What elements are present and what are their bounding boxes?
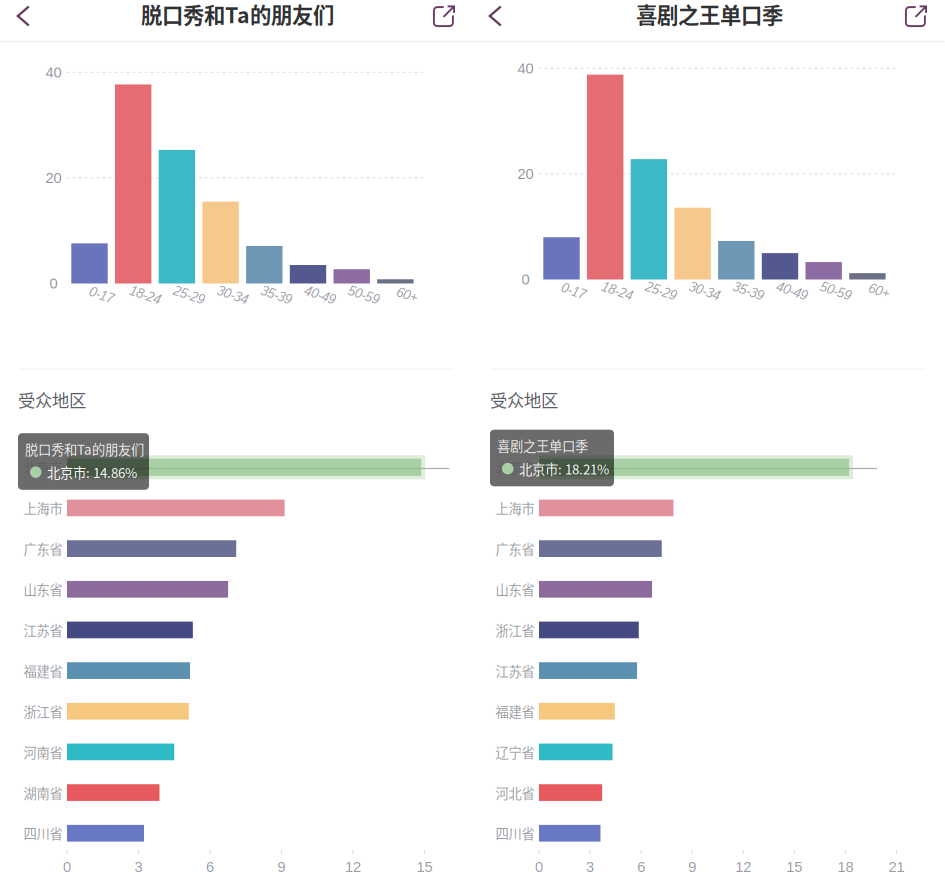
staticText: 福建省 [495, 702, 534, 721]
staticText: 35-39 [732, 284, 764, 298]
staticText: 山东省 [23, 580, 62, 599]
staticText: 30-34 [689, 284, 721, 298]
staticText: 福建省 [23, 661, 62, 680]
staticText: 21 [888, 859, 904, 875]
staticText: 50-59 [348, 288, 380, 302]
staticText: 25-29 [645, 284, 677, 298]
staticText: 0 [63, 859, 71, 875]
staticText: 40-49 [776, 284, 808, 298]
staticText: 喜剧之王单口季 [636, 0, 783, 29]
staticText: 脱口秀和Ta的朋友们 [25, 439, 144, 458]
staticText: 12 [735, 859, 751, 875]
button[interactable]: 分享 [421, 0, 467, 34]
button[interactable]: 返回 [472, 0, 518, 34]
staticText: 北京市: 18.21% [519, 459, 609, 478]
staticText: 40 [45, 64, 61, 80]
staticText: 0 [521, 271, 529, 288]
staticText: 9 [277, 859, 285, 875]
staticText: 喜剧之王单口季 [497, 436, 588, 455]
staticText: 四川省 [23, 824, 62, 843]
staticText: 北京市 [23, 458, 62, 477]
staticText: 18-24 [129, 288, 161, 302]
staticText: 3 [586, 859, 594, 875]
staticText: 20 [45, 170, 61, 186]
staticText: 浙江省 [495, 620, 534, 640]
staticText: 20 [517, 166, 533, 182]
staticText: 3 [134, 859, 142, 875]
staticText: 湖南省 [23, 783, 62, 802]
staticText: 25-29 [173, 288, 205, 302]
staticText: 0 [535, 859, 543, 875]
staticText: 受众地区 [490, 387, 558, 412]
staticText: 35-39 [260, 288, 292, 302]
button[interactable]: 返回 [0, 0, 46, 34]
staticText: 广东省 [495, 539, 534, 558]
staticText: 河北省 [495, 783, 534, 802]
staticText: 受众地区 [18, 387, 86, 412]
staticText: 山东省 [495, 580, 534, 599]
staticText: 0-17 [561, 284, 586, 298]
staticText: 辽宁省 [495, 742, 534, 762]
staticText: 0-17 [89, 288, 114, 302]
staticText: 浙江省 [23, 702, 62, 721]
staticText: 北京市 [495, 458, 534, 477]
staticText: 40 [517, 60, 533, 76]
button[interactable]: 分享 [893, 0, 939, 34]
staticText: 江苏省 [23, 620, 62, 640]
staticText: 18 [837, 859, 853, 875]
staticText: 四川省 [495, 824, 534, 843]
staticText: 50-59 [820, 284, 852, 298]
staticText: 18-24 [601, 284, 633, 298]
staticText: 广东省 [23, 539, 62, 558]
staticText: 15 [416, 859, 432, 875]
staticText: 60+ [868, 284, 890, 298]
staticText: 9 [688, 859, 696, 875]
staticText: 上海市 [23, 498, 62, 518]
staticText: 60+ [396, 288, 418, 302]
staticText: 河南省 [23, 742, 62, 762]
staticText: 30-34 [217, 288, 249, 302]
staticText: 脱口秀和Ta的朋友们 [141, 0, 334, 29]
staticText: 12 [345, 859, 361, 875]
staticText: 6 [637, 859, 645, 875]
staticText: 北京市: 14.86% [47, 462, 137, 482]
staticText: 江苏省 [495, 661, 534, 680]
staticText: 6 [206, 859, 214, 875]
staticText: 0 [49, 275, 57, 292]
staticText: 15 [786, 859, 802, 875]
staticText: 上海市 [495, 498, 534, 518]
staticText: 40-49 [304, 288, 336, 302]
